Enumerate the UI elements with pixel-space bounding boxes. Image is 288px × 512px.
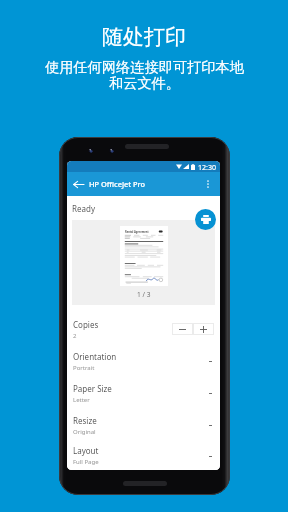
staticText: Letter <box>73 396 90 404</box>
staticText: Layout <box>73 445 99 456</box>
button[interactable]: More options <box>201 177 215 191</box>
button[interactable]: Increase copies <box>193 323 214 335</box>
button[interactable]: Change Resize <box>206 421 214 429</box>
staticText: Copies <box>73 319 99 330</box>
staticText: Rental Agreement <box>125 230 149 234</box>
staticText: Resize <box>73 415 97 426</box>
button[interactable]: Copies <box>67 313 220 345</box>
button[interactable]: Resize <box>67 409 220 441</box>
staticText: Paper Size <box>73 383 112 394</box>
staticText: 使用任何网络连接即可打印本地和云文件。 <box>43 58 246 92</box>
button[interactable]: Decrease copies <box>172 323 193 335</box>
button[interactable]: Change Orientation <box>206 357 214 365</box>
button[interactable]: Print <box>195 209 216 230</box>
button[interactable]: Back <box>71 177 85 191</box>
staticText: 随处打印 <box>102 24 186 50</box>
button[interactable]: Orientation <box>67 345 220 377</box>
staticText: Portrait <box>73 364 95 372</box>
staticText: Orientation <box>73 351 117 362</box>
button[interactable]: Change Layout <box>206 452 214 460</box>
staticText: 1 / 3 <box>137 290 151 299</box>
button[interactable]: Change Paper Size <box>206 389 214 397</box>
staticText: Ready <box>72 203 95 214</box>
staticText: Full Page <box>73 458 99 466</box>
button[interactable]: Layout <box>67 441 220 470</box>
staticText: 2 <box>73 332 77 340</box>
staticText: HP OfficeJet Pro <box>89 179 146 189</box>
staticText: 12:30 <box>198 162 217 172</box>
staticText: Original <box>73 428 96 436</box>
button[interactable]: Paper Size <box>67 377 220 409</box>
